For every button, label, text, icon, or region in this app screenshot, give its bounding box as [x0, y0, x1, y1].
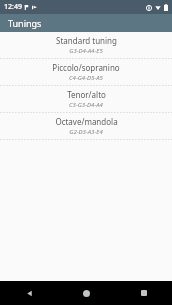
- button[interactable]: Home: [58, 281, 115, 305]
- button[interactable]: Recent apps: [115, 281, 172, 305]
- staticText: Tunings: [8, 17, 42, 29]
- staticText: C3-G3-D4-A4: [69, 101, 103, 109]
- staticText: Piccolo/sopranino: [52, 62, 120, 73]
- button[interactable]: Standard tuning: [0, 32, 172, 58]
- staticText: Tenor/alto: [67, 89, 106, 100]
- staticText: G2-D3-A3-E4: [69, 128, 103, 136]
- staticText: C4-G4-D5-A5: [69, 74, 103, 82]
- button[interactable]: Back: [0, 281, 58, 305]
- staticText: G3-D4-A4-E5: [69, 47, 103, 55]
- staticText: 12:49: [4, 2, 22, 12]
- button[interactable]: Octave/mandola: [0, 113, 172, 139]
- staticText: Octave/mandola: [55, 116, 118, 127]
- button[interactable]: Piccolo/sopranino: [0, 59, 172, 85]
- button[interactable]: Tenor/alto: [0, 86, 172, 112]
- staticText: Standard tuning: [56, 35, 117, 46]
